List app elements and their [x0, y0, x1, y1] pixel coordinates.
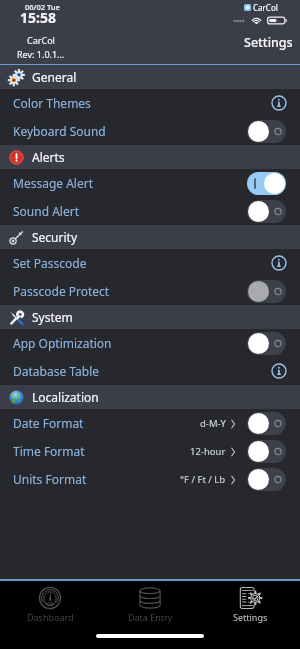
staticText: Security [32, 229, 78, 245]
staticText: Alerts [32, 149, 65, 165]
button[interactable]: Sound Alert [0, 197, 300, 225]
button[interactable]: App Optimization [0, 329, 300, 357]
button[interactable]: Switch off [247, 120, 286, 143]
staticText: App Optimization [13, 335, 112, 351]
staticText: Dashboard [27, 611, 74, 623]
staticText: CarCol [27, 34, 55, 46]
button[interactable]: Switch off [247, 440, 286, 463]
button[interactable]: Units Format [0, 465, 300, 493]
staticText: Rev: 1.0.1… [17, 48, 65, 60]
staticText: 15:58 [20, 8, 56, 24]
button[interactable]: Color Themes [0, 89, 300, 117]
button[interactable]: Data Entry [100, 581, 200, 649]
button[interactable]: Switch off [247, 332, 286, 355]
staticText: System [32, 309, 73, 325]
staticText: Date Format [13, 415, 84, 431]
button[interactable]: Message Alert [0, 169, 300, 197]
staticText: Units Format [13, 471, 87, 487]
staticText: General [32, 69, 77, 85]
button[interactable]: Passcode Protect [0, 277, 300, 305]
other: Dashboard [39, 587, 61, 609]
staticText: Localization [32, 389, 99, 405]
button[interactable]: Switch off [247, 468, 286, 491]
staticText: CarCol [253, 2, 278, 13]
staticText: Message Alert [13, 175, 93, 191]
button[interactable]: Database Table [0, 357, 300, 385]
button[interactable]: Switch off [247, 280, 286, 303]
button[interactable]: Switch off [247, 412, 286, 435]
button[interactable]: Switch off [247, 200, 286, 223]
staticText: Sound Alert [13, 203, 80, 219]
staticText: 12-hour [190, 445, 226, 458]
button[interactable]: Switch on [247, 172, 286, 195]
staticText: Time Format [13, 443, 85, 459]
button[interactable]: Settings [200, 581, 300, 649]
staticText: Database Table [13, 363, 99, 379]
button[interactable]: Time Format [0, 437, 300, 465]
staticText: Set Passcode [13, 255, 87, 271]
staticText: Settings [233, 611, 268, 623]
other: Settings [239, 587, 261, 609]
button[interactable]: Set Passcode [0, 249, 300, 277]
staticText: 06/02 Tue [25, 2, 60, 12]
staticText: Keyboard Sound [13, 123, 106, 139]
staticText: Passcode Protect [13, 283, 110, 299]
button[interactable]: Dashboard [0, 581, 100, 649]
staticText: Color Themes [13, 95, 91, 111]
staticText: d-M-Y [200, 417, 226, 430]
button[interactable]: Date Format [0, 409, 300, 437]
staticText: Data Entry [128, 611, 173, 623]
staticText: Settings [244, 34, 293, 51]
staticText: °F / Ft / Lb [180, 473, 226, 486]
button[interactable]: Keyboard Sound [0, 117, 300, 145]
other: Data Entry [139, 587, 161, 609]
